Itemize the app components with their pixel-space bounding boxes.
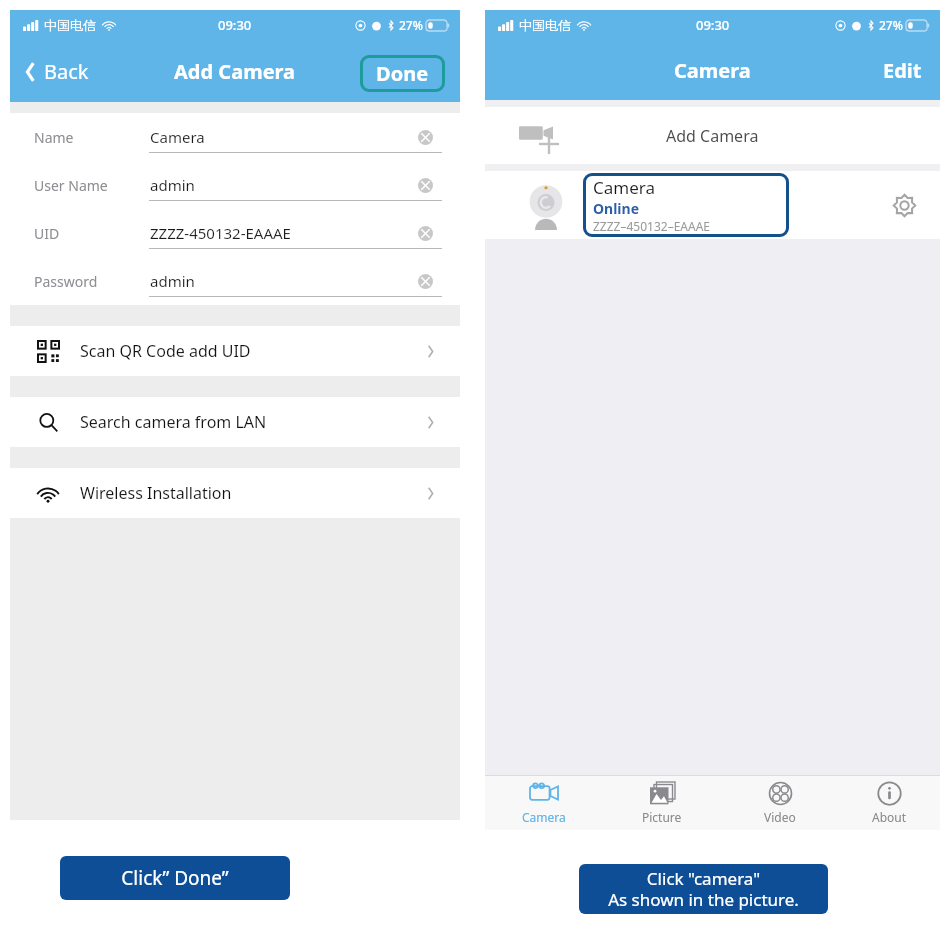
staticText: Camera (522, 809, 566, 825)
staticText: Camera (150, 127, 205, 147)
staticText: Online (593, 199, 639, 218)
staticText: Back (44, 58, 89, 85)
staticText: Add Camera (666, 125, 759, 147)
button[interactable]: Wireless Installation (10, 468, 460, 518)
button[interactable]: Video (721, 780, 839, 825)
staticText: admin (150, 271, 195, 291)
staticText: 中国电信 (519, 17, 571, 33)
staticText: Click” Done” (121, 865, 229, 891)
staticText: ZZZZ-450132-EAAAE (150, 223, 291, 243)
staticText: About (872, 809, 907, 825)
staticText: Video (764, 809, 796, 825)
staticText: 27% (399, 17, 423, 33)
button[interactable]: Camera (485, 171, 940, 239)
button[interactable]: Settings (891, 192, 918, 219)
button[interactable]: Search camera from LAN (10, 397, 460, 447)
button[interactable]: Camera (485, 780, 603, 825)
staticText: 09:30 (696, 16, 730, 34)
staticText: Edit (883, 57, 922, 84)
staticText: 中国电信 (44, 17, 96, 33)
staticText: User Name (34, 176, 108, 195)
staticText: Search camera from LAN (80, 411, 426, 433)
staticText: Picture (642, 809, 682, 825)
staticText: Add Camera (174, 58, 296, 85)
button[interactable]: Add Camera (485, 107, 940, 164)
staticText: Done (376, 60, 429, 87)
button[interactable]: Edit (883, 57, 922, 84)
staticText: Camera (593, 176, 655, 199)
button[interactable]: Picture (603, 780, 721, 825)
staticText: Scan QR Code add UID (80, 340, 426, 362)
staticText: 27% (879, 17, 903, 33)
staticText: Click "camera" As shown in the picture. (608, 867, 799, 911)
button[interactable]: About (839, 780, 940, 825)
button[interactable]: Click "camera" As shown in the picture. (579, 864, 828, 914)
button[interactable]: Done (376, 60, 429, 87)
staticText: Name (34, 128, 74, 147)
button[interactable]: Back (24, 58, 89, 85)
staticText: ZZZZ–450132–EAAAE (593, 218, 710, 234)
button[interactable]: Scan QR Code add UID (10, 326, 460, 376)
button[interactable]: Click” Done” (60, 856, 290, 900)
staticText: 09:30 (218, 16, 252, 34)
staticText: Wireless Installation (80, 482, 426, 504)
staticText: Camera (674, 57, 751, 84)
staticText: admin (150, 175, 195, 195)
staticText: UID (34, 224, 60, 243)
staticText: Password (34, 272, 98, 291)
